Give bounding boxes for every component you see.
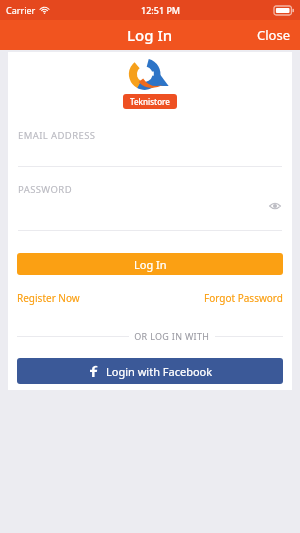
button[interactable]: Log In (17, 253, 283, 275)
button[interactable]: Show password (268, 199, 282, 213)
staticText: 12:51 PM (141, 4, 181, 16)
staticText: Log In (134, 257, 167, 272)
button[interactable]: EMAIL ADDRESS (8, 129, 292, 142)
staticText: PASSWORD (18, 183, 72, 196)
staticText: Close (257, 26, 290, 44)
staticText: Teknistore (130, 96, 170, 107)
button[interactable]: PASSWORD (8, 183, 292, 216)
button[interactable]: Forgot Password (204, 289, 283, 307)
staticText: EMAIL ADDRESS (18, 129, 96, 142)
staticText: Log In (127, 25, 173, 45)
button[interactable]: Close (247, 21, 300, 49)
staticText: Forgot Password (204, 291, 283, 305)
staticText: Login with Facebook (106, 364, 213, 379)
button[interactable]: Register Now (17, 289, 80, 307)
staticText: Carrier (6, 4, 36, 16)
button[interactable]: Login with Facebook (17, 358, 283, 384)
staticText: Register Now (17, 291, 80, 305)
staticText: OR LOG IN WITH (129, 330, 215, 342)
